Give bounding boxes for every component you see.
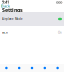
staticText: On [58,31,62,34]
staticText: Airplane Mode [2,17,23,21]
button[interactable] [38,67,51,69]
staticText: Settings [2,6,23,14]
button[interactable] [26,67,38,69]
button[interactable] [13,67,26,69]
button[interactable]: Back [1,3,10,9]
staticText: 9:41 [2,0,9,5]
staticText: ooo [56,0,62,5]
button[interactable] [51,67,64,69]
staticText: Wi-Fi [2,31,8,34]
button[interactable] [0,67,13,69]
staticText: Back [1,3,10,9]
